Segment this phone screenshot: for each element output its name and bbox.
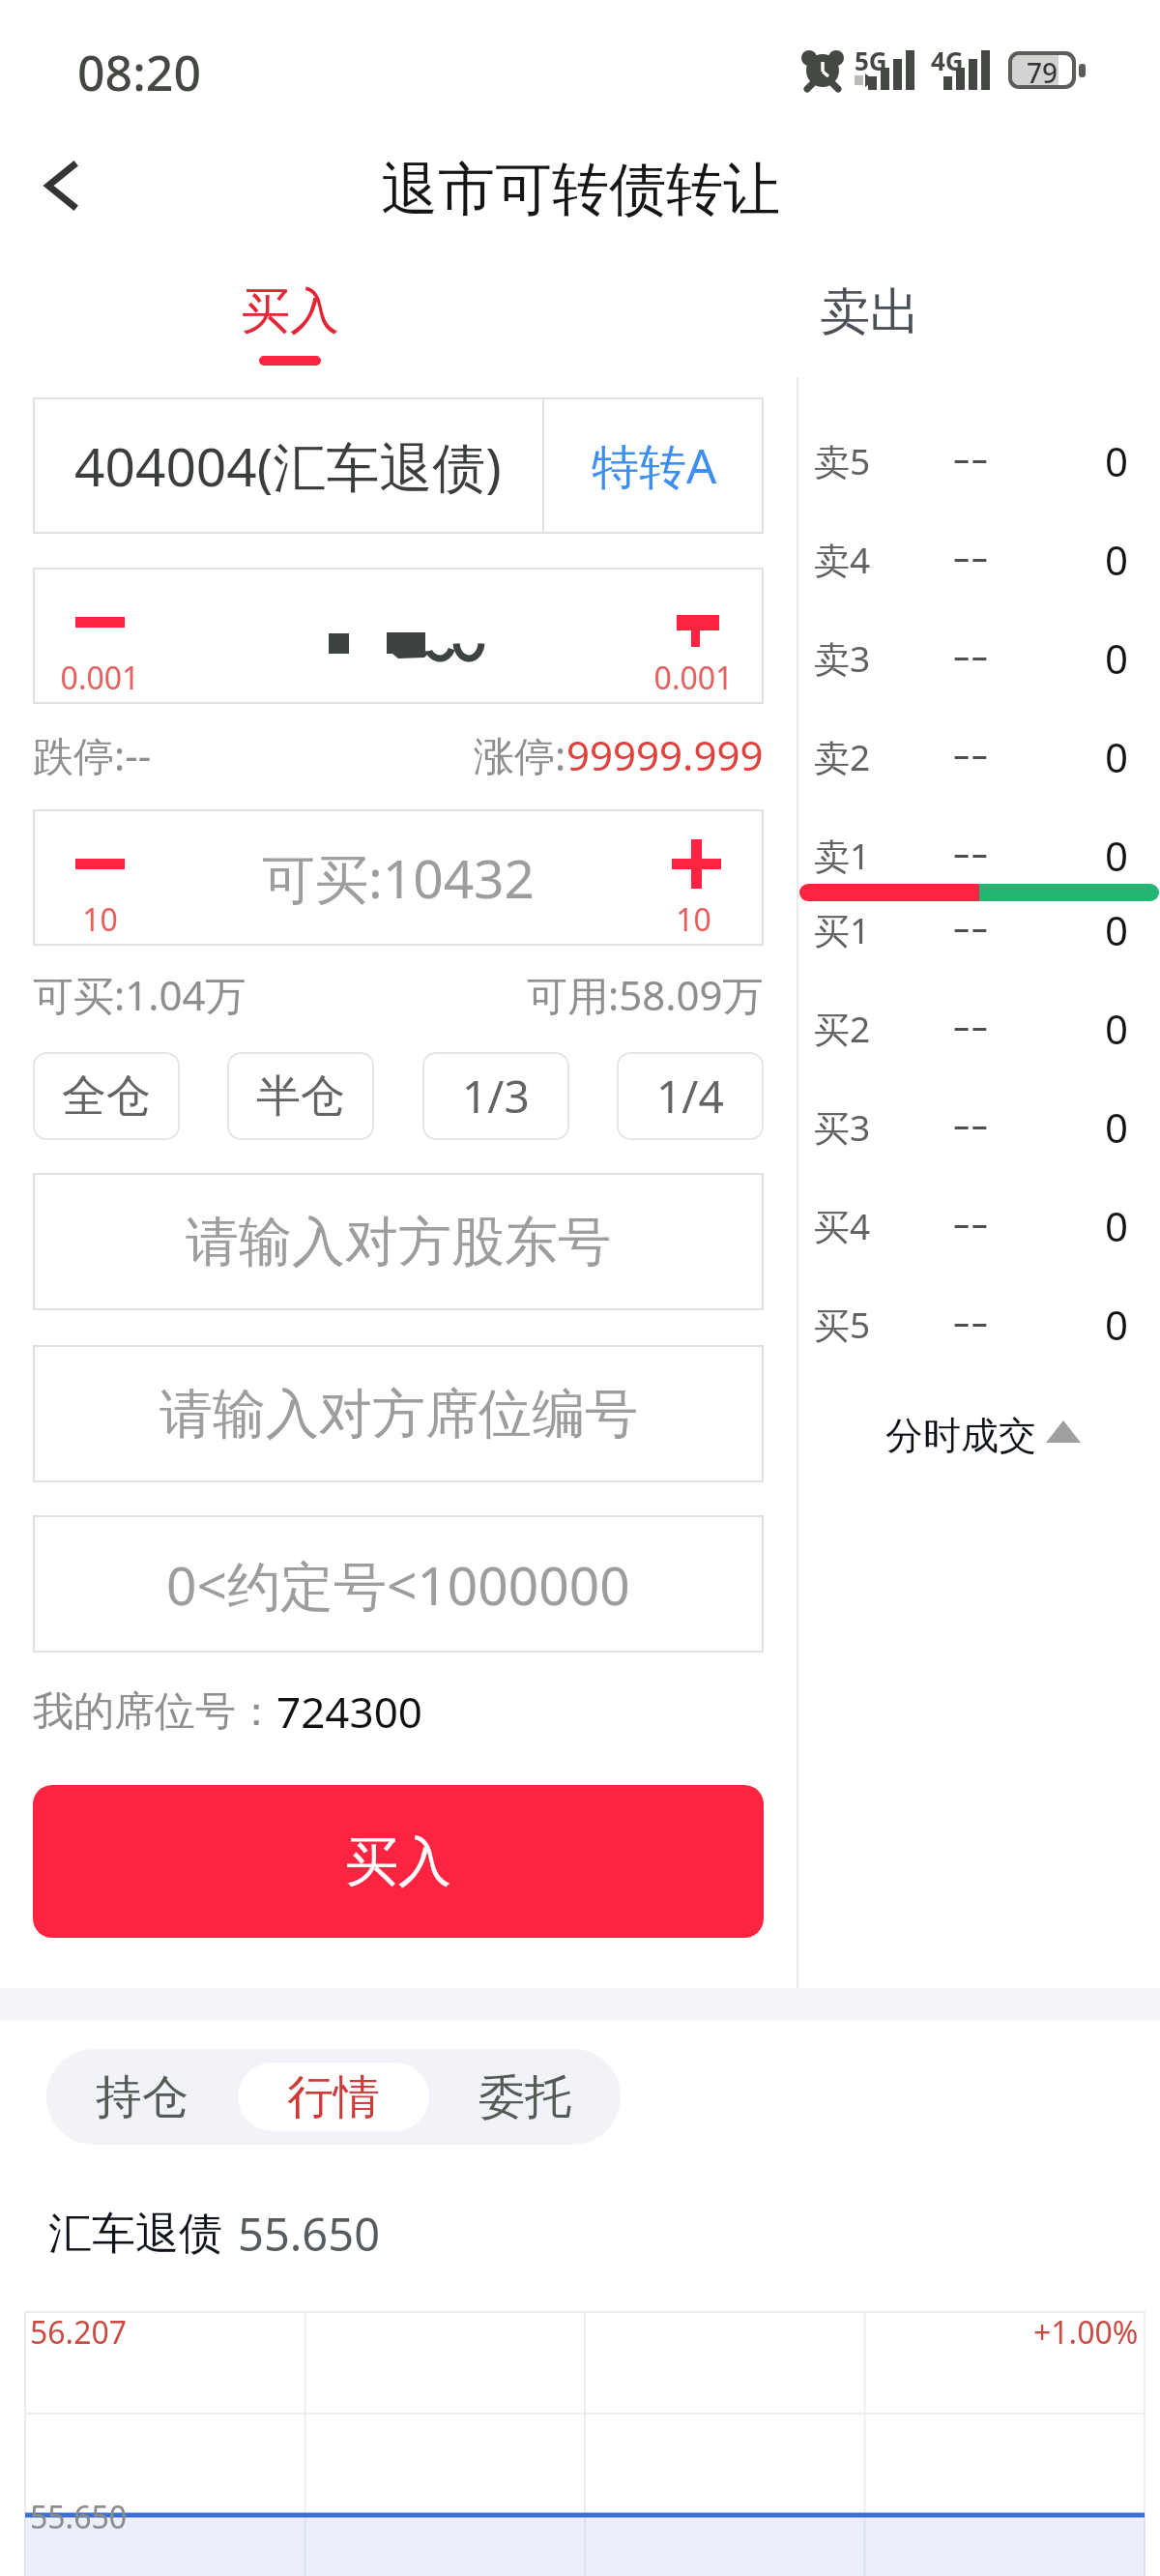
staticText: 买3 [814,1102,920,1152]
staticText: 0 [1021,1198,1128,1253]
button[interactable]: 买2 [814,994,1128,1062]
button[interactable]: 1/4 [617,1052,764,1140]
staticText: 行情 [287,2068,380,2126]
staticText: 08:20 [77,40,201,105]
button[interactable]: 半仓 [227,1052,374,1140]
button[interactable]: 分时成交 [885,1401,1088,1469]
button[interactable]: 卖出 [773,261,967,377]
staticText: 99999.999 [566,727,764,782]
staticText: 0.001 [623,657,764,699]
button[interactable]: 买入 [193,261,387,377]
staticText: 0.001 [33,657,167,699]
staticText: 79 [1027,55,1058,84]
staticText: -- [920,713,1021,780]
staticText: 卖5 [814,436,920,485]
button[interactable]: 卖3 [814,624,1128,691]
staticText: 5G [855,44,887,77]
button[interactable]: 持仓 [46,2049,238,2145]
staticText: 55.650 [30,2496,128,2538]
button[interactable]: Back [19,145,102,228]
staticText: 汇车退债 [48,2207,222,2262]
staticText: 0 [1021,1001,1128,1056]
staticText: 10 [623,898,764,941]
staticText: 0 [1021,1297,1128,1352]
staticText: 0 [1021,433,1128,488]
staticText: -- [920,811,1021,879]
button[interactable]: 404004(汇车退债) [33,397,542,534]
button[interactable]: 买4 [814,1191,1128,1259]
staticText: 请输入对方席位编号 [159,1381,638,1448]
staticText: 0<约定号<1000000 [166,1548,630,1621]
button[interactable]: 1/3 [422,1052,569,1140]
button[interactable]: 委托 [429,2049,621,2145]
button[interactable]: 行情 [238,2063,429,2131]
staticText: 1/3 [462,1066,530,1127]
button[interactable]: 买5 [814,1290,1128,1358]
button[interactable]: 买1 [814,895,1128,963]
staticText: +1.00% [1033,2311,1139,2354]
staticText: 卖3 [814,633,920,683]
staticText: 买4 [814,1201,920,1250]
staticText: 我的席位号： [33,1686,276,1738]
staticText: 724300 [276,1683,423,1741]
staticText: 买5 [814,1300,920,1349]
staticText: 特转A [592,433,717,498]
staticText: -- [920,886,1021,953]
staticText: 跌停:-- [33,727,152,782]
staticText: 可买:1.04万 [33,967,246,1022]
staticText: 1/4 [656,1066,724,1127]
staticText: 涨停: [474,727,566,782]
staticText: 10 [33,898,167,941]
button[interactable]: Decrease [33,568,173,704]
staticText: 0 [1021,902,1128,957]
button[interactable]: 卖2 [814,722,1128,790]
staticText: 4G [931,44,964,77]
button[interactable]: 全仓 [33,1052,180,1140]
staticText: 买1 [814,905,920,954]
button[interactable]: 买入 [33,1785,764,1938]
staticText: 买入 [241,280,339,342]
staticText: 0 [1021,828,1128,883]
staticText: -- [920,1280,1021,1348]
staticText: -- [920,417,1021,484]
staticText: 请输入对方股东号 [186,1209,611,1275]
staticText: 退市可转债转让 [381,154,780,225]
staticText: 56.207 [30,2311,128,2354]
staticText: -- [920,1182,1021,1249]
staticText: 0 [1021,532,1128,587]
button[interactable]: Increase [623,809,764,946]
button[interactable]: 卖5 [814,426,1128,494]
staticText: 买入 [345,1829,451,1895]
staticText: 半仓 [256,1068,345,1125]
staticText: -- [920,614,1021,682]
staticText: 0 [1021,729,1128,784]
staticText: 卖1 [814,831,920,880]
button[interactable]: 0<约定号<1000000 [33,1515,764,1653]
staticText: 持仓 [96,2068,188,2126]
staticText: 分时成交 [885,1412,1036,1459]
staticText: -- [920,1083,1021,1151]
staticText: 404004(汇车退债) [74,429,502,502]
staticText: 卖出 [820,280,920,344]
staticText: 卖2 [814,732,920,781]
staticText: 0 [1021,630,1128,686]
staticText: 0 [1021,1099,1128,1155]
button[interactable]: 特转A [544,397,764,534]
button[interactable]: Decrease [33,809,173,946]
button[interactable]: 请输入对方席位编号 [33,1345,764,1482]
staticText: -- [920,515,1021,583]
button[interactable]: 卖1 [814,821,1128,889]
button[interactable]: Increase [623,568,764,704]
button[interactable]: 请输入对方股东号 [33,1173,764,1310]
staticText: 委托 [478,2068,571,2126]
staticText: 买2 [814,1004,920,1053]
button[interactable]: 买3 [814,1093,1128,1160]
staticText: -- [920,984,1021,1052]
staticText: 可买:10432 [262,841,536,914]
staticText: 可用:58.09万 [527,967,764,1022]
staticText: 卖4 [814,535,920,584]
staticText: 55.650 [238,2203,381,2265]
staticText: 全仓 [62,1068,151,1125]
button[interactable]: 卖4 [814,525,1128,593]
